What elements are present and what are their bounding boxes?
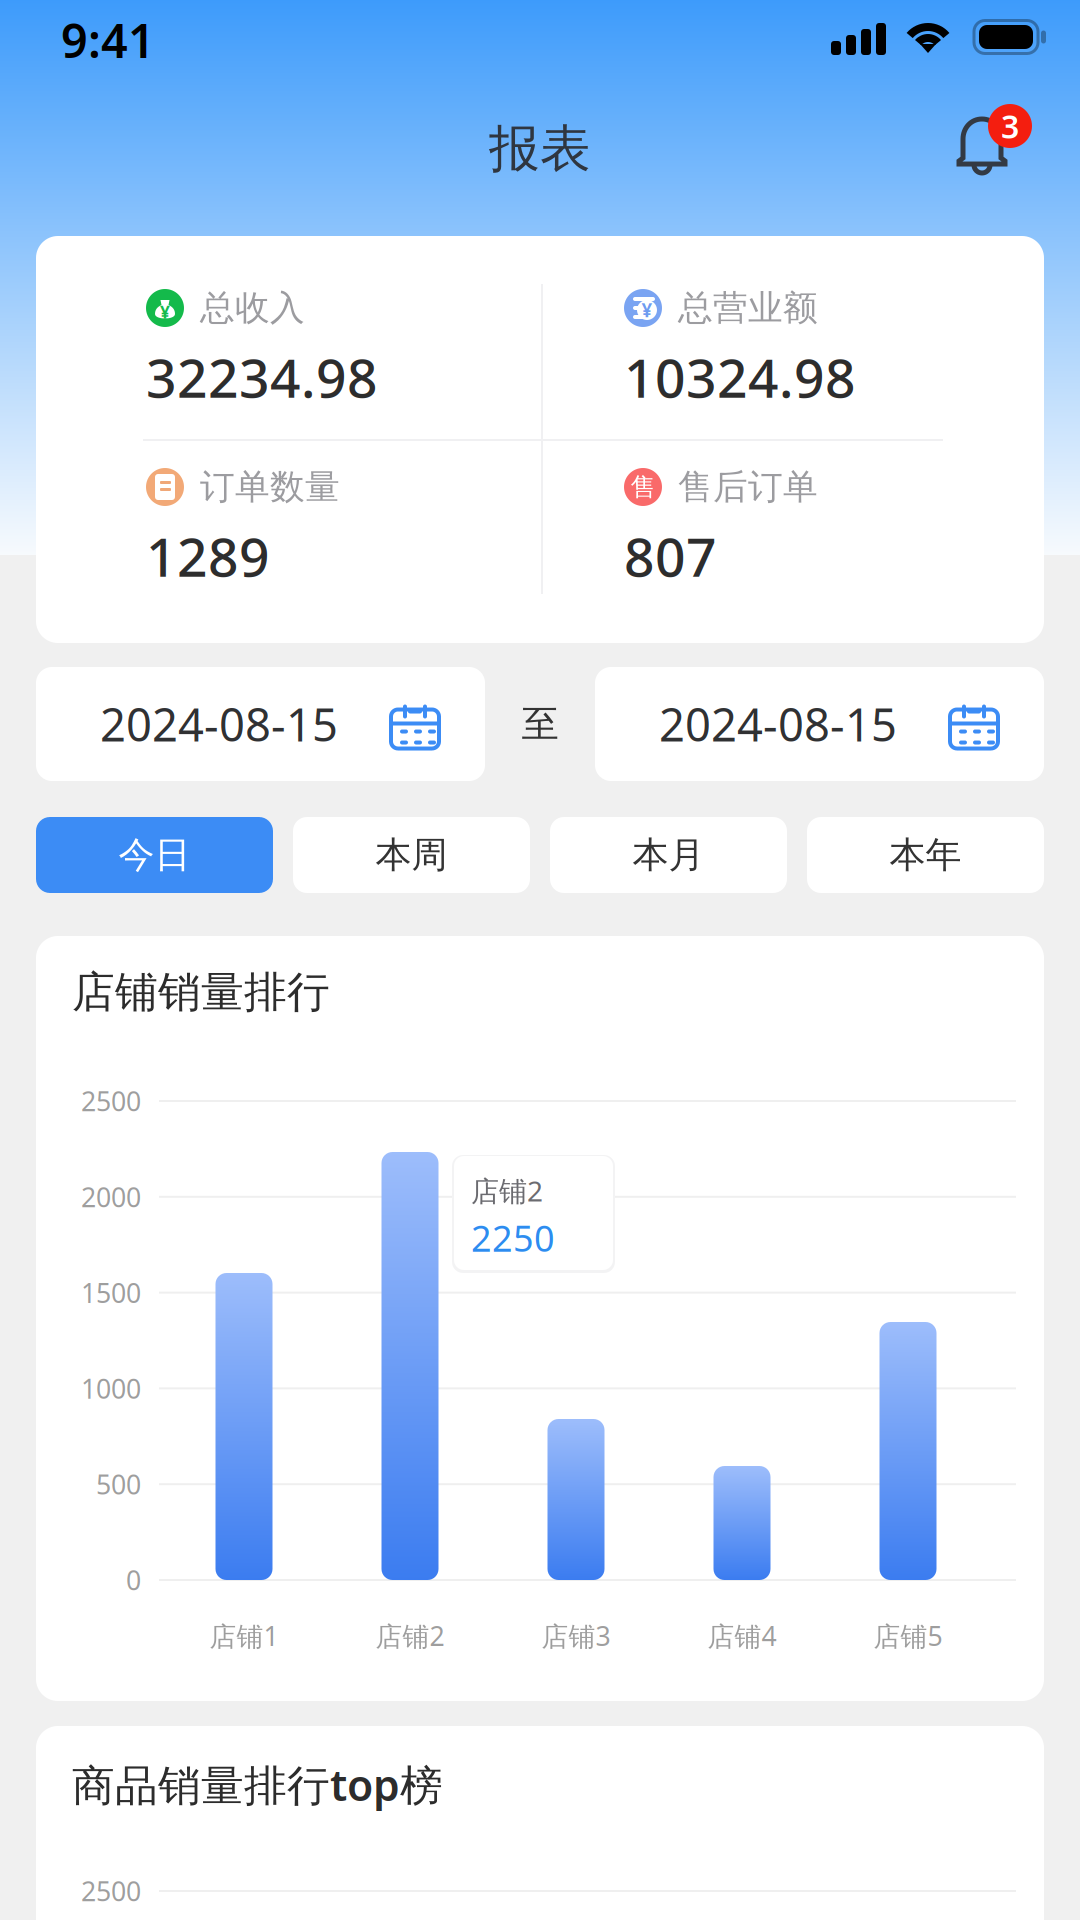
staticText: 店铺4 — [707, 1618, 776, 1653]
button[interactable]: 本周 — [293, 817, 530, 893]
staticText: 2500 — [81, 1873, 141, 1909]
staticText: 2250 — [471, 1214, 555, 1262]
staticText: 店铺3 — [541, 1618, 610, 1653]
staticText: 订单数量 — [200, 466, 340, 508]
staticText: 2024-08-15 — [100, 694, 338, 754]
staticText: 500 — [96, 1466, 141, 1502]
staticText: 807 — [624, 521, 717, 591]
staticText: 商品销量排行top榜 — [72, 1756, 443, 1813]
button[interactable]: 本月 — [550, 817, 787, 893]
button[interactable]: 2024-08-15 — [595, 667, 1044, 781]
staticText: 至 — [521, 701, 558, 747]
staticText: 总营业额 — [678, 287, 818, 329]
staticText: 3 — [1001, 105, 1019, 147]
staticText: 0 — [126, 1562, 141, 1598]
button[interactable]: 本年 — [807, 817, 1044, 893]
staticText: 报表 — [489, 118, 591, 180]
button[interactable]: 2024-08-15 — [36, 667, 485, 781]
staticText: 售 — [630, 471, 655, 502]
staticText: 店铺2 — [375, 1618, 444, 1653]
staticText: 店铺销量排行 — [72, 966, 330, 1018]
staticText: 32234.98 — [146, 342, 378, 412]
staticText: ¥ — [160, 300, 170, 323]
staticText: 本周 — [375, 833, 447, 877]
staticText: 1500 — [81, 1275, 141, 1310]
staticText: 2024-08-15 — [659, 694, 897, 754]
staticText: 2500 — [81, 1083, 141, 1119]
staticText: 1289 — [146, 521, 270, 591]
button[interactable]: 今日 — [36, 817, 273, 893]
staticText: 店铺1 — [209, 1618, 278, 1653]
staticText: 2000 — [81, 1179, 141, 1214]
staticText: 售后订单 — [678, 466, 818, 508]
staticText: 1000 — [81, 1371, 141, 1406]
staticText: 今日 — [118, 833, 190, 877]
staticText: 店铺5 — [873, 1618, 942, 1653]
staticText: 本月 — [632, 833, 704, 877]
staticText: 本年 — [889, 833, 961, 877]
staticText: 10324.98 — [624, 342, 856, 412]
button[interactable]: Notifications — [955, 102, 1049, 196]
staticText: 9:41 — [61, 9, 155, 71]
staticText: ¥ — [641, 298, 652, 322]
staticText: 总收入 — [200, 287, 305, 329]
staticText: 店铺2 — [471, 1172, 543, 1209]
